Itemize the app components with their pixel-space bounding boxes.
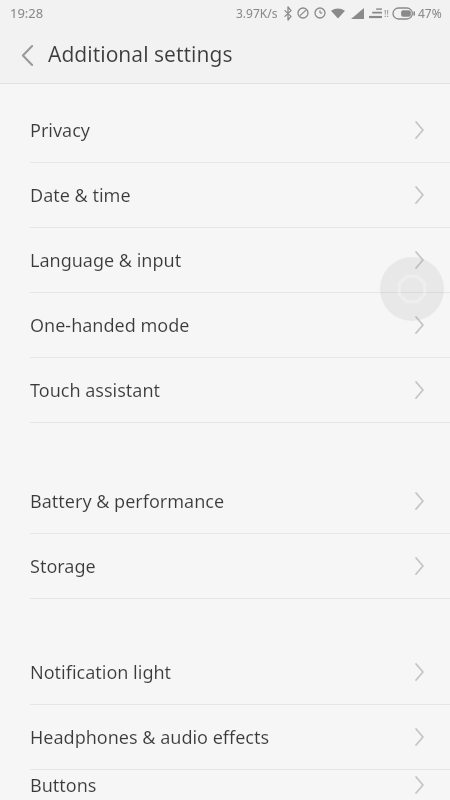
- button[interactable]: Storage: [0, 534, 450, 598]
- staticText: 19:28: [10, 4, 44, 22]
- staticText: One-handed mode: [30, 313, 415, 338]
- staticText: !!: [384, 7, 389, 19]
- button[interactable]: One-handed mode: [0, 293, 450, 357]
- staticText: Headphones & audio effects: [30, 725, 415, 750]
- button[interactable]: Buttons: [0, 770, 450, 800]
- staticText: 3.97K/s: [236, 5, 278, 21]
- button[interactable]: Back: [3, 31, 51, 79]
- button[interactable]: Battery & performance: [0, 469, 450, 533]
- button[interactable]: Date & time: [0, 163, 450, 227]
- button[interactable]: Privacy: [0, 98, 450, 162]
- button[interactable]: Language & input: [0, 228, 450, 292]
- button[interactable]: Touch assistant: [0, 358, 450, 422]
- staticText: Notification light: [30, 660, 415, 685]
- staticText: Privacy: [30, 118, 415, 143]
- button[interactable]: Quick ball: [380, 257, 444, 321]
- button[interactable]: Notification light: [0, 640, 450, 704]
- staticText: Buttons: [30, 773, 415, 798]
- staticText: Battery & performance: [30, 489, 415, 514]
- staticText: Storage: [30, 554, 415, 579]
- staticText: 47%: [418, 5, 442, 21]
- button[interactable]: Headphones & audio effects: [0, 705, 450, 769]
- staticText: Date & time: [30, 183, 415, 208]
- staticText: Language & input: [30, 248, 415, 273]
- staticText: Touch assistant: [30, 378, 415, 403]
- staticText: Additional settings: [48, 40, 233, 69]
